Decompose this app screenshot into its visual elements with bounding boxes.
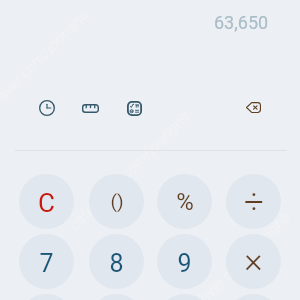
button[interactable]: % [157, 174, 212, 229]
staticText: () [110, 190, 124, 212]
button[interactable]: History [37, 98, 57, 118]
staticText: 9 [177, 249, 192, 278]
staticText: C [38, 188, 55, 218]
staticText: 8 [109, 249, 124, 278]
staticText: % [176, 188, 194, 216]
staticText: ÷ [244, 182, 264, 223]
button[interactable]: ÷ [226, 174, 281, 229]
button[interactable]: 9 [157, 234, 212, 289]
button[interactable]: Backspace [243, 97, 263, 117]
button[interactable]: 5 [89, 294, 144, 300]
button[interactable]: 6 [157, 294, 212, 300]
button[interactable]: − [226, 294, 281, 300]
button[interactable]: Scientific calculator [124, 98, 144, 118]
button[interactable]: () [89, 174, 144, 229]
button[interactable]: C [19, 174, 74, 229]
staticText: 7 [39, 249, 54, 278]
button[interactable]: 7 [19, 234, 74, 289]
button[interactable]: Unit converter [80, 98, 100, 118]
staticText: × [244, 240, 263, 281]
button[interactable]: 4 [19, 294, 74, 300]
button[interactable]: 8 [89, 234, 144, 289]
button[interactable]: × [226, 234, 281, 289]
staticText: 63,650 [214, 12, 269, 33]
